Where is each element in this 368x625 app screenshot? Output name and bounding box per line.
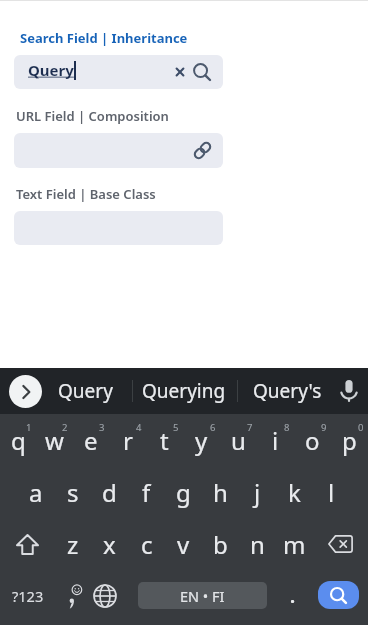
staticText: q	[11, 424, 26, 457]
staticText: Search Field | Inheritance	[20, 29, 188, 47]
staticText: x	[103, 528, 116, 561]
staticText: f	[142, 476, 151, 509]
button[interactable]	[318, 581, 359, 609]
staticText: j	[254, 476, 261, 509]
button[interactable]: .	[275, 570, 311, 622]
button[interactable]: g	[165, 466, 202, 518]
button[interactable]	[14, 133, 223, 168]
button[interactable]: Query's	[242, 368, 332, 414]
button[interactable]: m	[276, 518, 313, 570]
button[interactable]: e	[72, 414, 109, 466]
staticText: s	[67, 476, 79, 509]
staticText: h	[213, 476, 228, 509]
button[interactable]: t	[146, 414, 183, 466]
staticText: c	[141, 528, 153, 561]
button[interactable]: o	[294, 414, 331, 466]
staticText: Query's	[253, 378, 322, 404]
button[interactable]: a	[18, 466, 54, 518]
button[interactable]: q	[0, 414, 36, 466]
staticText: 1	[26, 421, 32, 434]
staticText: Querying	[142, 378, 226, 404]
button[interactable]: ?123	[6, 570, 50, 622]
staticText: 6	[210, 421, 216, 434]
staticText: i	[272, 424, 279, 457]
button[interactable]: Query	[40, 368, 130, 414]
staticText: p	[342, 424, 357, 457]
button[interactable]: d	[91, 466, 128, 518]
button[interactable]: j	[239, 466, 276, 518]
staticText: 8	[284, 421, 290, 434]
button[interactable]: z	[55, 518, 91, 570]
button[interactable]: u	[220, 414, 257, 466]
staticText: .	[290, 584, 296, 609]
button[interactable]: p	[331, 414, 368, 466]
staticText: u	[231, 424, 246, 457]
staticText: t	[160, 424, 169, 457]
button[interactable]	[334, 375, 364, 407]
staticText: n	[250, 528, 265, 561]
button[interactable]: Querying	[139, 368, 229, 414]
staticText: a	[29, 476, 43, 509]
button[interactable]	[313, 518, 368, 570]
staticText: r	[123, 424, 133, 457]
button[interactable]: x	[91, 518, 128, 570]
staticText: Text Field | Base Class	[16, 185, 156, 203]
button[interactable]	[0, 518, 55, 570]
staticText: e	[84, 424, 98, 457]
staticText: g	[176, 476, 191, 509]
staticText: 0	[358, 421, 364, 434]
button[interactable]: w	[36, 414, 72, 466]
button[interactable]: b	[202, 518, 239, 570]
staticText: b	[213, 528, 228, 561]
button[interactable]: c	[128, 518, 165, 570]
button[interactable]: n	[239, 518, 276, 570]
staticText: 2	[62, 421, 68, 434]
button[interactable]: i	[257, 414, 294, 466]
button[interactable]: y	[183, 414, 220, 466]
staticText: Query	[58, 378, 113, 404]
staticText: EN • FI	[180, 586, 225, 606]
button[interactable]	[87, 570, 123, 622]
staticText: o	[305, 424, 320, 457]
staticText: w	[45, 424, 64, 457]
button[interactable]: EN • FI	[138, 582, 267, 609]
button[interactable]: s	[54, 466, 91, 518]
staticText: 4	[136, 421, 142, 434]
button[interactable]: f	[128, 466, 165, 518]
button[interactable]: r	[109, 414, 146, 466]
button[interactable]: v	[165, 518, 202, 570]
staticText: 3	[99, 421, 105, 434]
button[interactable]: k	[276, 466, 313, 518]
button[interactable]	[9, 375, 42, 408]
staticText: 9	[321, 421, 327, 434]
staticText: v	[177, 528, 190, 561]
staticText: ?123	[12, 586, 44, 606]
button[interactable]: Query	[14, 55, 223, 89]
staticText: Query	[28, 60, 74, 80]
staticText: 5	[173, 421, 179, 434]
staticText: y	[195, 424, 208, 457]
staticText: z	[67, 528, 79, 561]
button[interactable]: h	[202, 466, 239, 518]
staticText: k	[288, 476, 301, 509]
staticText: l	[328, 476, 335, 509]
button[interactable]: l	[313, 466, 350, 518]
button[interactable]	[57, 570, 93, 622]
staticText: d	[102, 476, 117, 509]
staticText: URL Field | Composition	[16, 107, 169, 125]
staticText: m	[283, 528, 306, 561]
staticText: 7	[247, 421, 253, 434]
